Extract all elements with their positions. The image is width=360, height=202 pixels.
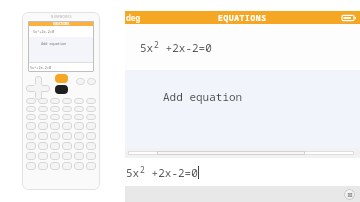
button[interactable]: Calculator key — [50, 114, 60, 120]
button[interactable] — [35, 76, 42, 100]
button[interactable]: Calculator key — [62, 98, 72, 104]
button[interactable]: Calculator key — [50, 98, 60, 104]
staticText: Add equation — [163, 89, 243, 104]
other: Directional pad — [26, 76, 50, 100]
other: Battery — [342, 14, 356, 22]
button[interactable]: Calculator key — [26, 122, 36, 130]
button[interactable]: Calculator key — [74, 122, 84, 130]
button[interactable]: Calculator key — [74, 152, 84, 160]
button[interactable]: Calculator key — [86, 98, 96, 104]
button[interactable]: Calculator key — [62, 132, 72, 140]
staticText: 5x²+2x-2=0 — [30, 65, 51, 70]
staticText: +2x-2=0 — [145, 165, 198, 180]
button[interactable]: Calculator key — [62, 122, 72, 130]
button[interactable]: Calculator key — [86, 142, 96, 150]
button[interactable]: Calculator key — [38, 114, 48, 120]
button[interactable]: 5x — [125, 158, 360, 186]
button[interactable]: Calculator key — [50, 152, 60, 160]
button[interactable]: Calculator key — [62, 162, 72, 170]
button[interactable]: Calculator key — [38, 132, 48, 140]
button[interactable]: Calculator key — [26, 152, 36, 160]
button[interactable]: Calculator key — [62, 142, 72, 150]
button[interactable]: Calculator key — [62, 106, 72, 112]
staticText: 2 — [154, 39, 159, 50]
button[interactable]: Calculator key — [50, 122, 60, 130]
button[interactable]: Calculator key — [50, 162, 60, 170]
staticText: 2 — [140, 164, 145, 175]
staticText: NUMWORKS — [51, 15, 72, 19]
staticText: +2x-2=0 — [159, 40, 212, 55]
button[interactable]: Calculator key — [38, 98, 48, 104]
staticText: 5x — [126, 165, 140, 180]
button[interactable]: Calculator key — [26, 114, 36, 120]
button[interactable]: Calculator key — [38, 122, 48, 130]
button[interactable]: Calculator key — [38, 152, 48, 160]
button[interactable]: Calculator key — [50, 142, 60, 150]
button[interactable]: Calculator key — [26, 106, 36, 112]
staticText: Add equation — [41, 41, 67, 46]
button[interactable]: Calculator key — [50, 106, 60, 112]
button[interactable]: Calculator key — [38, 142, 48, 150]
button[interactable]: Calculator key — [74, 142, 84, 150]
button[interactable]: 5x — [125, 24, 360, 70]
button[interactable]: Calculator key — [74, 132, 84, 140]
button[interactable]: Home key — [55, 74, 68, 83]
button[interactable]: Calculator key — [38, 106, 48, 112]
staticText: EQUATIONS — [218, 12, 267, 23]
button[interactable]: Calculator key — [74, 162, 84, 170]
staticText: 5x²+2x-2=0 — [33, 29, 54, 34]
staticText: EQUATIONS — [53, 22, 70, 26]
button[interactable]: OK key — [55, 85, 68, 94]
button[interactable]: Calculator key — [62, 114, 72, 120]
button[interactable]: Calculator key — [74, 98, 84, 104]
button[interactable]: Calculator key — [86, 122, 96, 130]
button[interactable]: Calculator key — [26, 162, 36, 170]
button[interactable]: Horizontal scrollbar — [157, 151, 305, 155]
button[interactable]: Calculator key — [26, 132, 36, 140]
button[interactable]: Key — [87, 78, 96, 85]
staticText: 5x — [140, 40, 154, 55]
button[interactable]: Calculator key — [26, 142, 36, 150]
button[interactable]: Add equation — [125, 70, 360, 148]
button[interactable] — [26, 85, 50, 92]
button[interactable]: Calculator key — [74, 106, 84, 112]
button[interactable]: deg — [125, 11, 360, 24]
button[interactable]: Calculator key — [62, 152, 72, 160]
button[interactable]: Calculator key — [86, 152, 96, 160]
button[interactable]: Calculator key — [86, 162, 96, 170]
staticText: deg — [126, 12, 141, 23]
button[interactable]: Calculator key — [38, 162, 48, 170]
button[interactable]: Calculator key — [50, 132, 60, 140]
button[interactable]: Calculator key — [74, 114, 84, 120]
button[interactable]: Calculator key — [86, 106, 96, 112]
button[interactable]: Calculator key — [26, 98, 36, 104]
button[interactable]: Resize handle — [344, 189, 355, 200]
button[interactable]: Calculator key — [86, 132, 96, 140]
button[interactable]: Key — [76, 78, 85, 85]
button[interactable]: Calculator key — [86, 114, 96, 120]
